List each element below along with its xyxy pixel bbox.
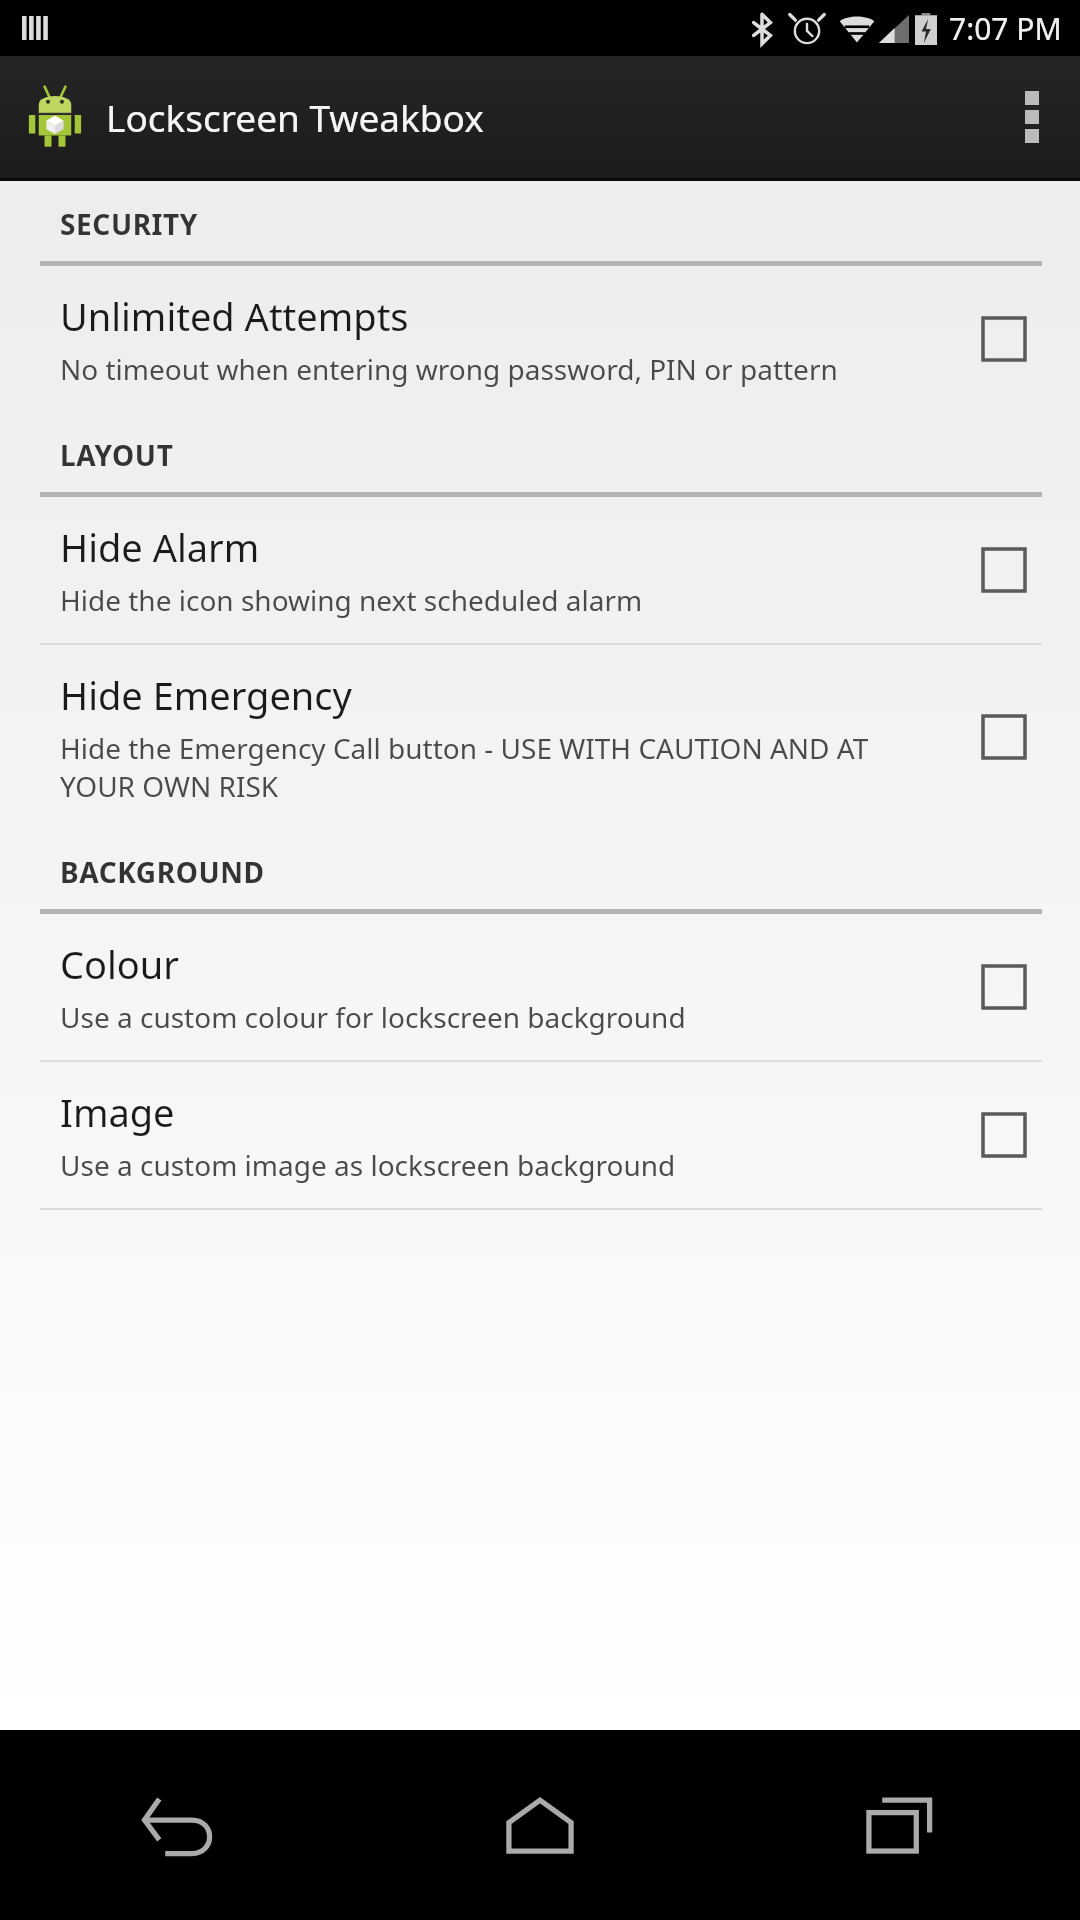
button[interactable]: Back bbox=[0, 1730, 360, 1920]
staticText: Use a custom image as lockscreen backgro… bbox=[60, 1146, 676, 1184]
button[interactable]: Hide Alarm checkbox bbox=[966, 532, 1042, 608]
button[interactable]: Colour checkbox bbox=[966, 949, 1042, 1025]
button[interactable]: Home bbox=[360, 1730, 720, 1920]
staticText: No timeout when entering wrong password,… bbox=[60, 350, 838, 388]
staticText: Image bbox=[60, 1086, 175, 1138]
button[interactable]: Hide Alarm bbox=[0, 497, 1080, 643]
staticText: Hide the icon showing next scheduled ala… bbox=[60, 581, 643, 619]
button[interactable]: Unlimited Attempts bbox=[0, 266, 1080, 412]
staticText: Unlimited Attempts bbox=[60, 290, 409, 342]
staticText: BACKGROUND bbox=[60, 853, 265, 891]
button[interactable]: Image checkbox bbox=[966, 1097, 1042, 1173]
button[interactable]: More options bbox=[984, 56, 1080, 178]
button[interactable]: Hide Emergency checkbox bbox=[966, 699, 1042, 775]
staticText: Hide the Emergency Call button - USE WIT… bbox=[60, 729, 944, 805]
staticText: Hide Emergency bbox=[60, 669, 352, 721]
staticText: 7:07 PM bbox=[949, 8, 1062, 49]
button[interactable]: Colour bbox=[0, 914, 1080, 1060]
staticText: Hide Alarm bbox=[60, 521, 260, 573]
staticText: Colour bbox=[60, 938, 179, 990]
button[interactable]: Recent apps bbox=[720, 1730, 1080, 1920]
staticText: Lockscreen Tweakbox bbox=[106, 92, 484, 142]
staticText: SECURITY bbox=[60, 205, 198, 243]
button[interactable]: Image bbox=[0, 1062, 1080, 1208]
button[interactable]: Unlimited Attempts checkbox bbox=[966, 301, 1042, 377]
button[interactable]: Hide Emergency bbox=[0, 645, 1080, 829]
staticText: Use a custom colour for lockscreen backg… bbox=[60, 998, 686, 1036]
staticText: LAYOUT bbox=[60, 436, 174, 474]
